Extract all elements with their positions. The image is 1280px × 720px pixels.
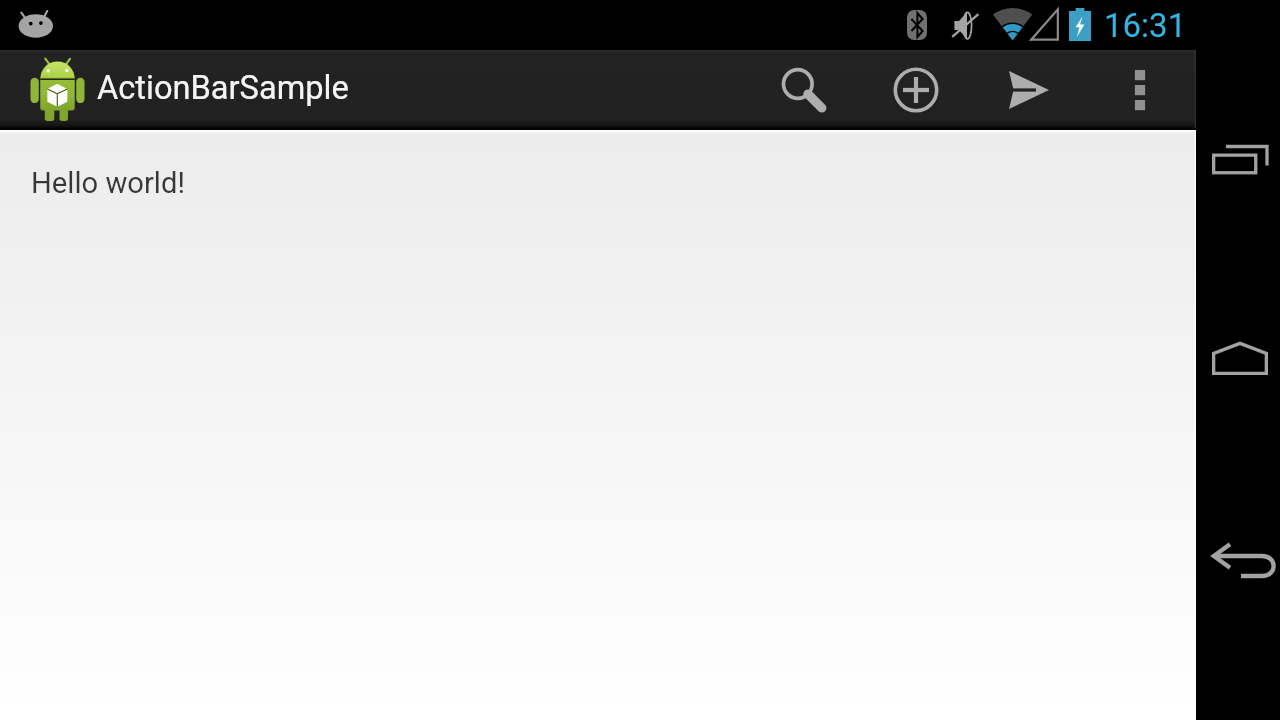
button[interactable]: Home [1196, 322, 1280, 394]
button[interactable]: ActionBarSample, home [0, 50, 360, 130]
button[interactable]: Recents [1196, 125, 1280, 197]
button[interactable]: Search [770, 50, 826, 130]
button[interactable]: More options [1112, 50, 1168, 130]
button[interactable]: Back [1196, 522, 1280, 594]
button[interactable]: Add [888, 50, 944, 130]
button[interactable]: Send [1001, 50, 1057, 130]
staticText: 16:31 [1104, 6, 1187, 45]
staticText: ActionBarSample [97, 69, 349, 107]
staticText: Hello world! [31, 166, 185, 200]
